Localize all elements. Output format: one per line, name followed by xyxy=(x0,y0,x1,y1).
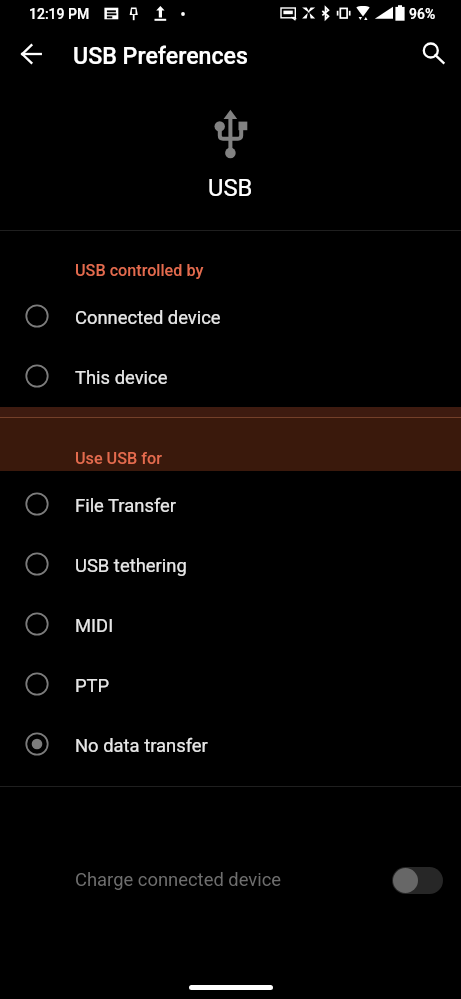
staticText: USB Preferences xyxy=(73,42,248,69)
button[interactable]: This device xyxy=(0,346,461,406)
button[interactable]: MIDI xyxy=(0,594,461,654)
staticText: 12:19 PM xyxy=(29,6,90,22)
button[interactable]: Connected device xyxy=(0,286,461,346)
staticText: Connected device xyxy=(75,307,221,329)
staticText: No data transfer xyxy=(75,735,208,757)
staticText: USB tethering xyxy=(75,555,187,577)
staticText: MIDI xyxy=(75,615,114,637)
staticText: USB controlled by xyxy=(75,261,204,280)
button[interactable]: Search xyxy=(409,32,457,80)
button[interactable]: No data transfer xyxy=(0,714,461,774)
button[interactable]: USB tethering xyxy=(0,534,461,594)
staticText: PTP xyxy=(75,675,110,697)
staticText: File Transfer xyxy=(75,495,177,517)
button[interactable]: Back xyxy=(8,32,56,80)
button[interactable]: Charge connected device xyxy=(0,850,461,910)
staticText: Charge connected device xyxy=(75,869,282,891)
button[interactable]: PTP xyxy=(0,654,461,714)
staticText: USB xyxy=(208,174,253,202)
staticText: Use USB for xyxy=(75,449,162,468)
staticText: This device xyxy=(75,367,168,389)
staticText: 96% xyxy=(409,6,436,22)
button[interactable]: File Transfer xyxy=(0,474,461,534)
